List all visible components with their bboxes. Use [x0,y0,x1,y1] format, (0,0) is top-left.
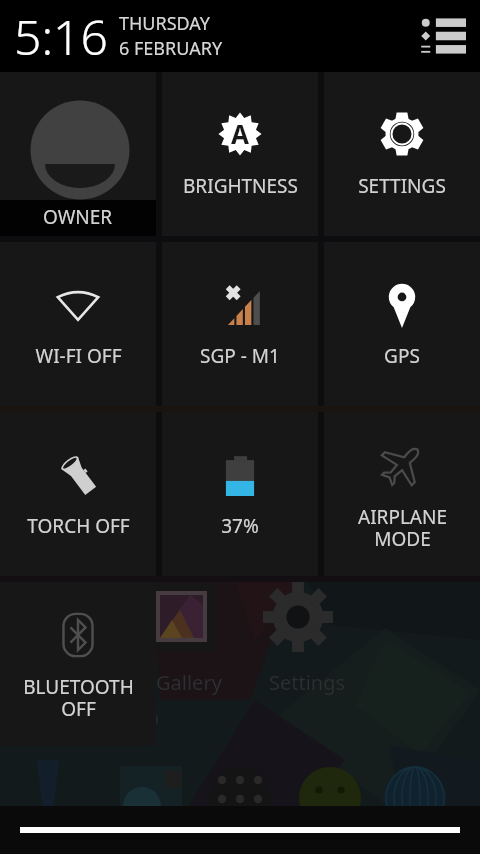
button[interactable]: GPS [324,242,480,406]
staticText: 5:16 [14,4,108,69]
staticText: Gallery [156,669,222,696]
staticText: Settings [269,669,346,696]
staticText: 6 FEBRUARY [119,36,223,61]
staticText: GPS [384,343,420,369]
button[interactable]: Airplane mode [324,412,480,576]
staticText: BRIGHTNESS [183,173,298,199]
button[interactable]: Quick settings [420,16,466,56]
staticText: SGP - M1 [200,343,280,369]
button[interactable]: Torch [0,412,156,576]
staticText: TORCH OFF [27,513,130,539]
staticText: SETTINGS [358,173,446,199]
button[interactable]: BLUETOOTH OFF [0,582,156,746]
button[interactable]: Mobile network [162,242,318,406]
staticText: AIRPLANE MODE [358,504,447,552]
staticText: BLUETOOTH OFF [23,674,134,722]
staticText: OWNER [43,204,113,230]
button[interactable]: Battery [162,412,318,576]
button[interactable]: Settings [324,72,480,236]
button[interactable]: Wi-Fi [0,242,156,406]
staticText: A [231,116,249,151]
button[interactable]: Owner [0,72,156,236]
staticText: WI-FI OFF [35,343,122,369]
staticText: 37% [221,513,259,539]
button[interactable]: Brightness [162,72,318,236]
staticText: THURSDAY [119,11,210,36]
